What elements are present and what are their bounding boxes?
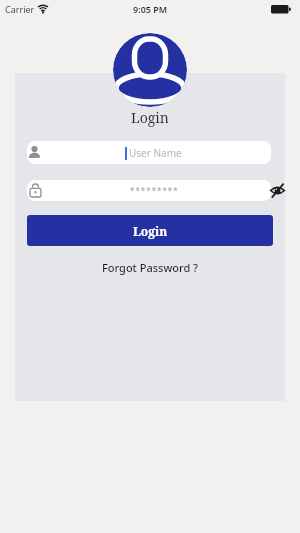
staticText: Login bbox=[131, 108, 169, 127]
button[interactable]: ********* bbox=[27, 180, 271, 201]
staticText: Login bbox=[133, 223, 168, 239]
staticText: ********* bbox=[130, 185, 179, 196]
staticText: Carrier bbox=[5, 3, 35, 15]
button[interactable] bbox=[266, 180, 290, 200]
button[interactable]: User Name bbox=[27, 141, 271, 164]
button[interactable]: Forgot Password ? bbox=[102, 260, 199, 275]
staticText: User Name bbox=[129, 146, 182, 160]
staticText: 9:05 PM bbox=[133, 3, 168, 15]
button[interactable]: Login bbox=[27, 215, 273, 246]
